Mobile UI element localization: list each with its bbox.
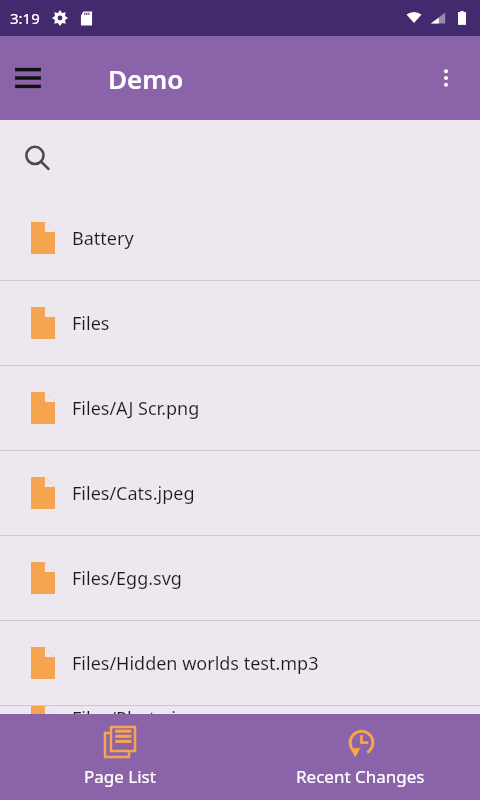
staticText: Demo <box>108 61 184 96</box>
button[interactable]: More options <box>418 50 474 106</box>
button[interactable]: Files/Photo.jpg <box>0 706 480 714</box>
staticText: Files/Egg.svg <box>72 566 182 591</box>
button[interactable]: Page List <box>0 714 240 800</box>
staticText: Files/Hidden worlds test.mp3 <box>72 651 319 676</box>
staticText: Battery <box>72 226 134 251</box>
button[interactable]: Recent Changes <box>240 714 480 800</box>
button[interactable]: Files <box>0 281 480 365</box>
staticText: Files/Photo.jpg <box>72 706 198 714</box>
staticText: Page List <box>84 765 156 788</box>
staticText: Files/Cats.jpeg <box>72 481 195 506</box>
button[interactable]: Files/AJ Scr.png <box>0 366 480 450</box>
button[interactable]: Search <box>0 120 480 196</box>
staticText: 3:19 <box>10 8 40 28</box>
staticText: Files <box>72 311 110 336</box>
button[interactable]: Open navigation drawer <box>0 50 56 106</box>
staticText: Recent Changes <box>296 765 425 788</box>
button[interactable]: Battery <box>0 196 480 280</box>
button[interactable]: Files/Cats.jpeg <box>0 451 480 535</box>
staticText: Files/AJ Scr.png <box>72 396 200 421</box>
button[interactable]: Files/Egg.svg <box>0 536 480 620</box>
button[interactable]: Files/Hidden worlds test.mp3 <box>0 621 480 705</box>
